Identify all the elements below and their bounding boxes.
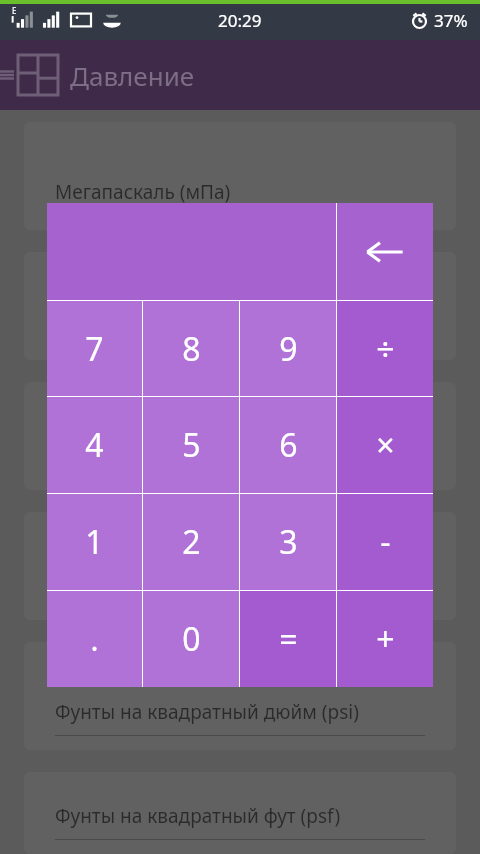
button[interactable]: Мегапаскаль (мПа) — [24, 122, 456, 230]
staticText: 37% — [434, 9, 468, 32]
staticText: 5 — [182, 423, 201, 467]
staticText: = — [279, 617, 298, 661]
button[interactable]: - — [337, 494, 433, 590]
button[interactable]: 1 — [47, 494, 142, 590]
staticText: 20:29 — [218, 9, 262, 32]
button[interactable]: ÷ — [337, 301, 433, 396]
staticText: 0 — [182, 617, 201, 661]
button[interactable]: Фунты на квадратный фут (psf) — [24, 772, 456, 854]
button[interactable] — [24, 252, 456, 360]
button[interactable]: × — [337, 397, 433, 493]
button[interactable] — [24, 512, 456, 620]
staticText: 7 — [85, 327, 104, 371]
staticText: . — [90, 619, 99, 660]
button[interactable]: 9 — [240, 301, 336, 396]
button[interactable]: Фунты на квадратный дюйм (psi) — [24, 642, 456, 750]
staticText: 2 — [182, 520, 201, 564]
button[interactable]: 3 — [240, 494, 336, 590]
staticText: Фунты на квадратный фут (psf) — [55, 803, 341, 829]
staticText: 9 — [279, 327, 298, 371]
button[interactable]: . — [47, 591, 142, 687]
staticText: 8 — [182, 327, 201, 371]
staticText: × — [376, 423, 395, 467]
button[interactable]: 4 — [47, 397, 142, 493]
button[interactable] — [24, 382, 456, 490]
staticText: Давление — [70, 58, 195, 93]
staticText: 3 — [279, 520, 298, 564]
staticText: ÷ — [376, 327, 395, 371]
staticText: E — [12, 5, 17, 16]
button[interactable]: Menu — [0, 40, 14, 110]
button[interactable]: 0 — [143, 591, 239, 687]
button[interactable]: = — [240, 591, 336, 687]
button[interactable]: 6 — [240, 397, 336, 493]
staticText: 1 — [85, 520, 104, 564]
button[interactable]: 5 — [143, 397, 239, 493]
button[interactable]: + — [337, 591, 433, 687]
staticText: 6 — [279, 423, 298, 467]
staticText: + — [376, 617, 395, 661]
button[interactable]: 8 — [143, 301, 239, 396]
staticText: Мегапаскаль (мПа) — [55, 179, 231, 205]
staticText: Фунты на квадратный дюйм (psi) — [55, 699, 359, 725]
button[interactable]: 2 — [143, 494, 239, 590]
staticText: 4 — [85, 423, 104, 467]
button[interactable]: Dashboard — [14, 51, 62, 99]
button[interactable]: Backspace — [337, 203, 433, 300]
button[interactable]: 7 — [47, 301, 142, 396]
staticText: - — [380, 520, 391, 564]
